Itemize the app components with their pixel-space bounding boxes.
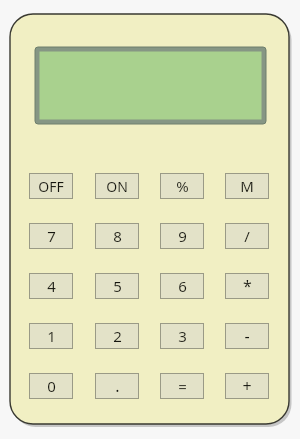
staticText: 4 (47, 276, 56, 296)
staticText: 1 (47, 326, 56, 346)
button[interactable]: - (225, 323, 269, 349)
staticText: / (244, 226, 250, 246)
staticText: % (176, 176, 189, 196)
staticText: OFF (38, 177, 64, 196)
button[interactable]: 9 (160, 223, 204, 249)
staticText: 7 (47, 226, 56, 246)
button[interactable]: 6 (160, 273, 204, 299)
staticText: ON (106, 177, 128, 196)
staticText: 5 (113, 276, 122, 296)
staticText: = (178, 376, 187, 396)
button[interactable]: 0 (29, 373, 73, 399)
staticText: + (242, 375, 252, 397)
button[interactable]: 8 (95, 223, 139, 249)
button[interactable]: OFF (29, 173, 73, 199)
staticText: 3 (178, 326, 187, 346)
staticText: 2 (113, 326, 122, 346)
staticText: . (115, 375, 120, 397)
button[interactable]: 4 (29, 273, 73, 299)
button[interactable]: 7 (29, 223, 73, 249)
button[interactable]: * (225, 273, 269, 299)
button[interactable]: 2 (95, 323, 139, 349)
button[interactable]: / (225, 223, 269, 249)
button[interactable]: % (160, 173, 204, 199)
staticText: 8 (113, 226, 122, 246)
button[interactable]: 1 (29, 323, 73, 349)
staticText: 0 (47, 376, 56, 396)
button[interactable]: + (225, 373, 269, 399)
staticText: M (240, 176, 254, 196)
staticText: * (243, 275, 252, 297)
staticText: 6 (178, 276, 187, 296)
button[interactable]: Calculator display (35, 47, 266, 124)
button[interactable]: . (95, 373, 139, 399)
button[interactable]: M (225, 173, 269, 199)
button[interactable]: ON (95, 173, 139, 199)
staticText: 9 (178, 226, 187, 246)
button[interactable]: 3 (160, 323, 204, 349)
button[interactable]: = (160, 373, 204, 399)
staticText: - (244, 325, 250, 347)
button[interactable]: 5 (95, 273, 139, 299)
